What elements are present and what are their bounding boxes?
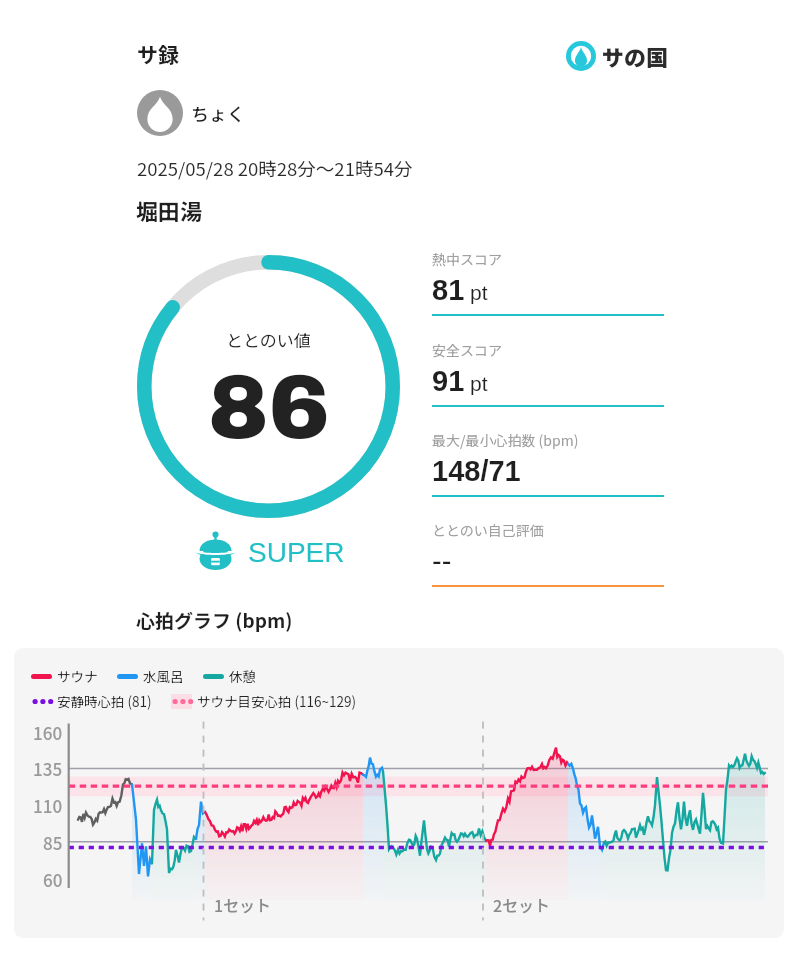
- button[interactable]: 最大/最小心拍数 (bpm): [432, 417, 664, 497]
- staticText: SUPER: [248, 537, 345, 568]
- staticText: 85: [43, 830, 63, 854]
- staticText: 2セット: [493, 893, 551, 916]
- staticText: 1セット: [214, 893, 272, 916]
- button[interactable]: SUPER: [195, 527, 345, 568]
- staticText: 熱中スコア: [432, 249, 502, 269]
- staticText: pt: [470, 372, 488, 395]
- staticText: 160: [33, 720, 63, 744]
- staticText: 心拍グラフ (bpm): [136, 606, 293, 634]
- staticText: 堀田湯: [136, 194, 203, 226]
- staticText: 安静時心拍 (81): [57, 691, 152, 711]
- staticText: サ録: [137, 39, 179, 69]
- staticText: サウナ: [57, 666, 98, 686]
- staticText: 休憩: [229, 666, 256, 686]
- staticText: ととのい自己評価: [432, 520, 544, 540]
- staticText: 安全スコア: [432, 340, 502, 360]
- staticText: 最大/最小心拍数 (bpm): [432, 430, 579, 450]
- staticText: 91: [432, 365, 465, 397]
- staticText: 110: [33, 793, 63, 817]
- staticText: 148/71: [432, 455, 521, 487]
- staticText: 水風呂: [143, 666, 184, 686]
- staticText: 135: [33, 756, 63, 780]
- button[interactable]: ととのい自己評価: [432, 507, 664, 587]
- button[interactable]: 熱中スコア: [432, 236, 664, 316]
- staticText: 86: [208, 358, 330, 457]
- staticText: ととのい値: [226, 327, 311, 352]
- staticText: 60: [43, 867, 63, 891]
- staticText: サの国: [602, 40, 669, 72]
- button[interactable]: サの国 ホーム: [566, 40, 669, 72]
- button[interactable]: 安全スコア: [432, 327, 664, 407]
- staticText: pt: [470, 281, 488, 304]
- staticText: 2025/05/28 20時28分〜21時54分: [137, 155, 413, 182]
- staticText: ちょく: [191, 100, 245, 126]
- staticText: --: [432, 545, 452, 577]
- staticText: 81: [432, 274, 465, 306]
- button[interactable]: ちょく: [137, 90, 245, 136]
- staticText: サウナ目安心拍 (116~129): [197, 691, 357, 711]
